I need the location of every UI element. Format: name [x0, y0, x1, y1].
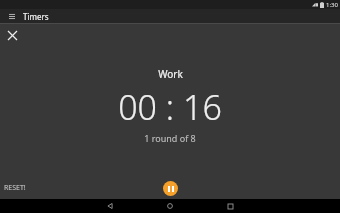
staticText: Work	[158, 67, 183, 81]
staticText: 1:30	[326, 1, 338, 9]
staticText: 1 round of 8	[144, 132, 196, 144]
button[interactable]: Pause	[163, 181, 178, 196]
button[interactable]: Menu	[6, 11, 17, 22]
staticText: 00 : 16	[118, 84, 222, 130]
button[interactable]: Close	[2, 25, 22, 45]
button[interactable]: Recent apps	[200, 199, 260, 213]
button[interactable]: Back	[80, 199, 140, 213]
button[interactable]: Home	[140, 199, 200, 213]
staticText: RESET!	[4, 183, 26, 193]
button[interactable]: RESET!	[3, 182, 27, 194]
staticText: Timers	[23, 11, 49, 22]
